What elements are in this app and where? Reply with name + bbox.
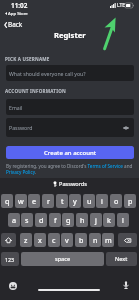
staticText: n (93, 235, 98, 245)
staticText: Next (115, 255, 128, 263)
button[interactable]: t (56, 194, 68, 208)
staticText: a (12, 215, 17, 225)
button[interactable]: u (83, 194, 95, 208)
other: Show password (123, 126, 129, 130)
staticText: k (107, 215, 111, 225)
staticText: App Store (8, 10, 28, 16)
button[interactable]: o (110, 194, 122, 208)
button[interactable]: c (48, 233, 60, 247)
staticText: x (38, 235, 42, 245)
button[interactable]: Delete (118, 233, 137, 247)
button[interactable]: Shift (1, 233, 16, 247)
staticText: o (114, 196, 119, 206)
staticText: LTE (117, 2, 126, 9)
staticText: q (5, 196, 10, 206)
button[interactable]: p (124, 194, 136, 208)
button[interactable]: q (1, 194, 13, 208)
button[interactable]: Dictation (123, 281, 129, 289)
staticText: l (122, 215, 124, 225)
staticText: Register (54, 30, 86, 40)
button[interactable]: r (42, 194, 54, 208)
button[interactable]: v (61, 233, 73, 247)
staticText: p (128, 196, 133, 206)
button[interactable]: d (35, 213, 47, 227)
button[interactable]: Emoji keyboard (9, 282, 17, 290)
staticText: By registering, you agree to Discord's T… (6, 163, 134, 175)
staticText: space (55, 255, 71, 263)
button[interactable]: b (75, 233, 87, 247)
staticText: PICK A USERNAME (5, 56, 50, 62)
staticText: Back (8, 20, 23, 29)
button[interactable]: s (21, 213, 33, 227)
button[interactable]: n (89, 233, 101, 247)
button[interactable]: Email (6, 99, 134, 115)
button[interactable]: l (117, 213, 129, 227)
staticText: Email (9, 104, 23, 111)
staticText: u (87, 196, 92, 206)
staticText: d (39, 215, 44, 225)
staticText: e (32, 196, 37, 206)
button[interactable]: h (76, 213, 88, 227)
staticText: v (65, 235, 69, 245)
button[interactable]: Passwords (50, 179, 90, 189)
staticText: ACCOUNT INFORMATION (5, 88, 66, 94)
button[interactable]: Next (106, 252, 137, 266)
staticText: m (105, 235, 112, 245)
staticText: h (80, 215, 85, 225)
button[interactable]: f (49, 213, 61, 227)
staticText: g (66, 215, 71, 225)
button[interactable]: Password (6, 118, 134, 137)
staticText: y (73, 196, 77, 206)
staticText: 123 (5, 256, 15, 263)
button[interactable]: m (102, 233, 114, 247)
button[interactable]: space (21, 252, 104, 266)
staticText: s (25, 215, 29, 225)
button[interactable]: x (34, 233, 46, 247)
button[interactable]: e (28, 194, 40, 208)
button[interactable]: 123 (1, 252, 19, 266)
staticText: w (18, 196, 24, 206)
button[interactable]: Create an account (6, 146, 134, 159)
staticText: t (61, 196, 64, 206)
staticText: What should everyone call you? (9, 70, 86, 77)
staticText: r (47, 196, 50, 206)
button[interactable]: y (69, 194, 81, 208)
button[interactable]: z (20, 233, 32, 247)
staticText: j (95, 215, 97, 225)
staticText: 11:02 (11, 1, 28, 10)
button[interactable]: Back (2, 19, 25, 30)
staticText: Passwords (59, 180, 87, 188)
staticText: Password (9, 124, 33, 131)
button[interactable]: a (8, 213, 20, 227)
button[interactable]: By registering, you agree to Discord's T… (6, 163, 134, 175)
button[interactable]: g (62, 213, 74, 227)
staticText: Create an account (44, 149, 96, 157)
button[interactable]: k (103, 213, 115, 227)
button[interactable]: What should everyone call you? (6, 65, 134, 81)
staticText: b (79, 235, 84, 245)
staticText: i (101, 196, 103, 206)
staticText: c (52, 235, 56, 245)
button[interactable]: j (90, 213, 102, 227)
button[interactable]: i (96, 194, 108, 208)
staticText: f (54, 215, 57, 225)
staticText: z (24, 235, 28, 245)
button[interactable]: w (15, 194, 27, 208)
